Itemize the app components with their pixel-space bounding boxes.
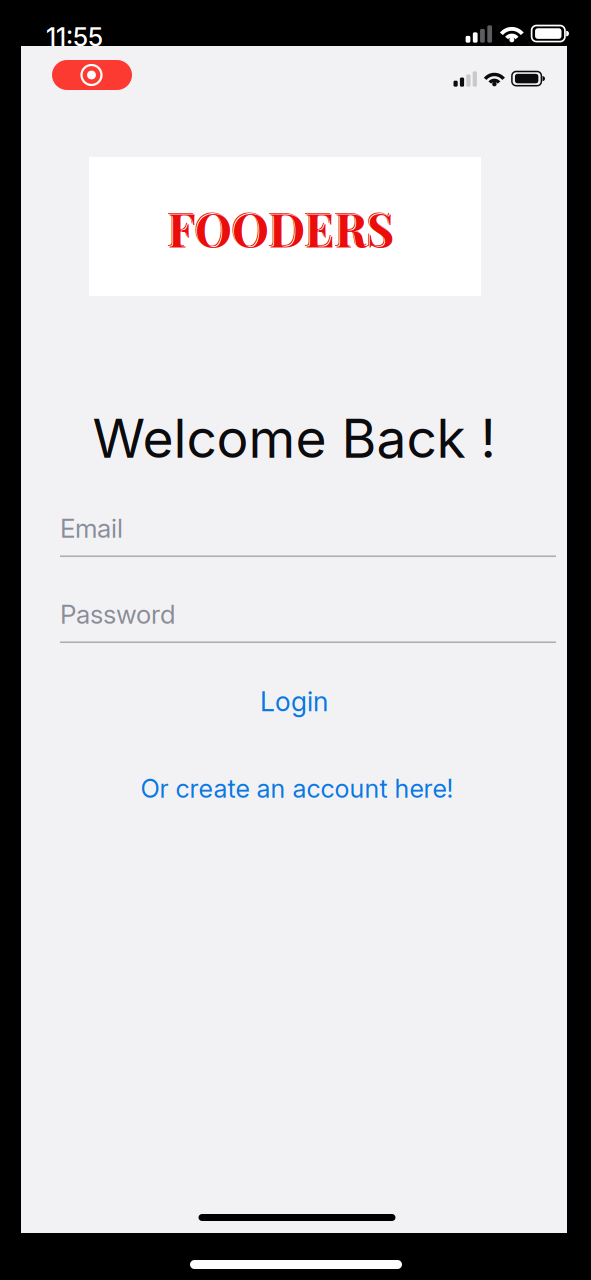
button[interactable]: Email [60,512,556,557]
staticText: FOODERS [166,195,392,258]
staticText: Or create an account here! [140,773,453,804]
staticText: 11:55 [46,22,103,52]
button[interactable]: Stop screen recording [52,60,132,90]
button[interactable]: Login [219,679,369,723]
button[interactable]: Or create an account here! [117,766,477,810]
staticText: Welcome Back ! [92,406,495,470]
button[interactable]: Password [60,598,556,643]
staticText: Login [260,685,328,718]
staticText: Password [60,598,176,630]
staticText: Email [60,512,123,544]
